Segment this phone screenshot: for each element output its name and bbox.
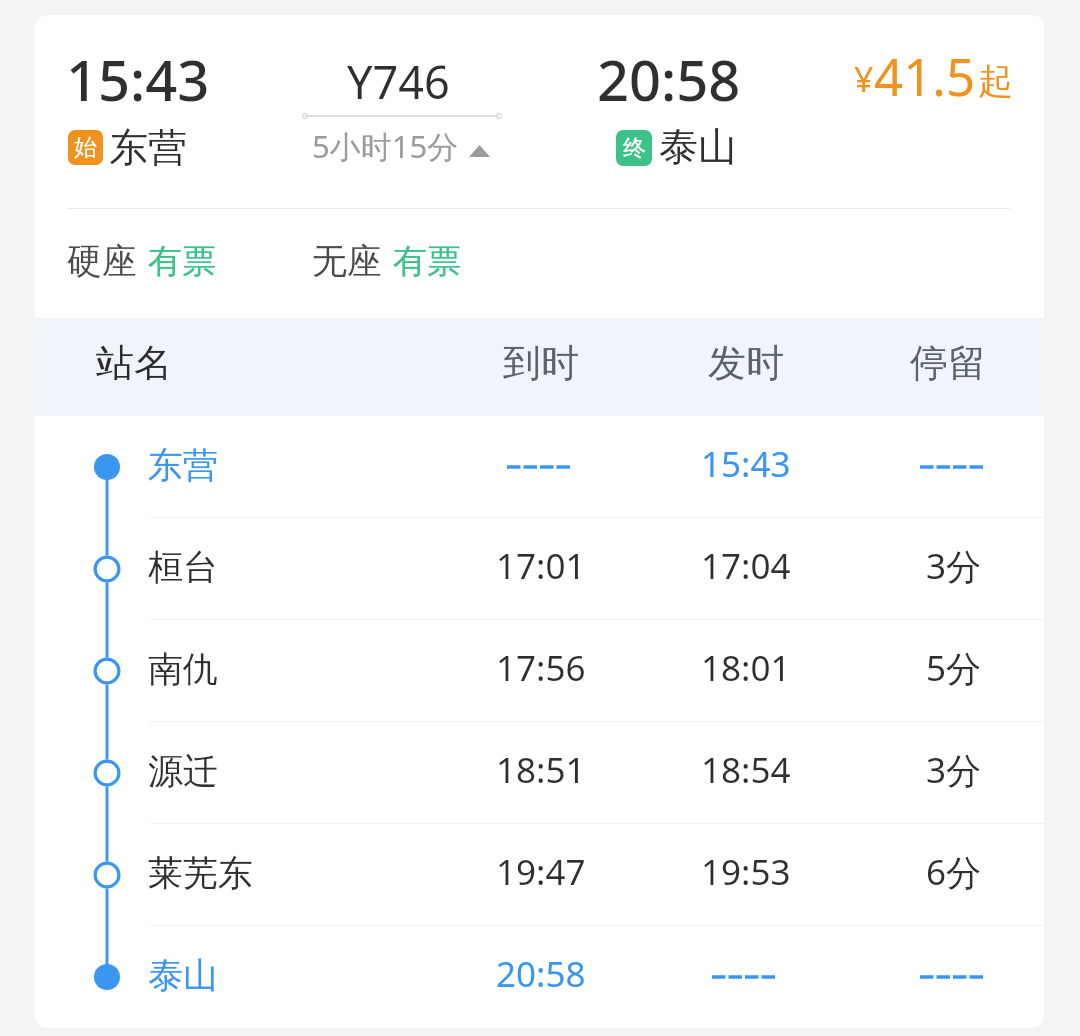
staticText: 41.5 bbox=[874, 41, 976, 110]
staticText: 17:56 bbox=[496, 644, 586, 692]
staticText: 18:01 bbox=[701, 644, 791, 692]
staticText: 15:43 bbox=[701, 440, 791, 488]
staticText: 20:58 bbox=[597, 41, 741, 117]
staticText: 停留 bbox=[910, 339, 986, 387]
staticText: Y746 bbox=[347, 51, 450, 112]
staticText: 终 bbox=[623, 134, 646, 163]
staticText: 3分 bbox=[926, 746, 982, 794]
staticText: 发时 bbox=[708, 339, 784, 387]
staticText: 硬座 bbox=[67, 239, 137, 283]
button[interactable]: 莱芜东 bbox=[35, 824, 1044, 926]
staticText: 站名 bbox=[96, 339, 172, 387]
staticText: 始 bbox=[74, 133, 97, 162]
staticText: 起 bbox=[978, 59, 1013, 103]
staticText: 有票 bbox=[148, 240, 216, 283]
button[interactable]: 南仇 bbox=[35, 620, 1044, 722]
staticText: 6分 bbox=[926, 848, 982, 896]
staticText: 5小时15分 bbox=[312, 125, 459, 167]
button[interactable]: 泰山 bbox=[35, 926, 1044, 1028]
staticText: 到时 bbox=[503, 339, 579, 387]
button[interactable]: 桓台 bbox=[35, 518, 1044, 620]
staticText: 17:04 bbox=[701, 542, 791, 590]
staticText: 桓台 bbox=[148, 545, 218, 589]
staticText: 东营 bbox=[148, 443, 218, 487]
button[interactable]: 15:43 bbox=[55, 31, 255, 181]
button[interactable]: 硬座 bbox=[67, 226, 216, 296]
staticText: 20:58 bbox=[496, 950, 586, 998]
staticText: 有票 bbox=[393, 240, 461, 283]
staticText: 泰山 bbox=[148, 953, 218, 997]
staticText: 泰山 bbox=[659, 122, 737, 171]
staticText: 5分 bbox=[926, 644, 982, 692]
button[interactable]: 20:58 bbox=[586, 31, 786, 181]
staticText: 19:53 bbox=[701, 848, 791, 896]
staticText: ¥ bbox=[854, 56, 874, 102]
staticText: 19:47 bbox=[496, 848, 586, 896]
staticText: 3分 bbox=[926, 542, 982, 590]
staticText: 东营 bbox=[109, 123, 187, 172]
button[interactable]: 源迁 bbox=[35, 722, 1044, 824]
staticText: 17:01 bbox=[496, 542, 586, 590]
staticText: 源迁 bbox=[148, 749, 218, 793]
staticText: 15:43 bbox=[66, 41, 210, 117]
staticText: 莱芜东 bbox=[148, 851, 253, 895]
staticText: 南仇 bbox=[148, 647, 218, 691]
staticText: 无座 bbox=[312, 239, 382, 283]
button[interactable]: 东营 bbox=[35, 416, 1044, 518]
button[interactable]: ¥ bbox=[847, 35, 1017, 127]
button[interactable]: 无座 bbox=[312, 226, 461, 296]
button[interactable]: 收起途经站 bbox=[307, 120, 497, 170]
staticText: 18:54 bbox=[701, 746, 791, 794]
staticText: 18:51 bbox=[496, 746, 586, 794]
